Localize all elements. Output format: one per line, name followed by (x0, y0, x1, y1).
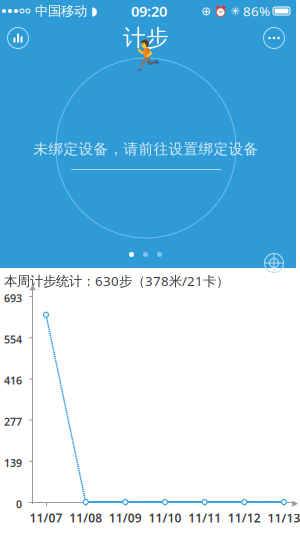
staticText: 11/07 (29, 510, 62, 526)
staticText: 277 (4, 415, 22, 429)
staticText: ◗ (91, 4, 97, 18)
staticText: 🏃 (127, 39, 164, 73)
staticText: 11/08 (69, 510, 102, 526)
staticText: 11/11 (188, 510, 221, 526)
staticText: 计步 (123, 24, 169, 52)
staticText: 11/13 (267, 510, 300, 526)
staticText: 11/09 (109, 510, 142, 526)
staticText: 86% (243, 2, 270, 20)
staticText: 11/12 (228, 510, 261, 526)
staticText: 中国移动 (35, 3, 87, 19)
staticText: ✳ (230, 4, 240, 18)
button[interactable]: Statistics (0, 20, 40, 56)
staticText: 554 (4, 332, 22, 346)
staticText: ▲ (29, 282, 35, 291)
staticText: 139 (4, 456, 22, 470)
staticText: 693 (4, 291, 22, 305)
staticText: ▶ (292, 498, 298, 508)
staticText: ⊕ (201, 4, 211, 18)
staticText: 11/10 (148, 510, 181, 526)
staticText: 416 (4, 373, 22, 388)
staticText: 本周计步统计：630步（378米/21卡） (4, 272, 229, 290)
staticText: 未绑定设备，请前往设置绑定设备 (33, 140, 258, 158)
button[interactable]: More options (252, 20, 296, 56)
staticText: 0 (16, 497, 22, 511)
staticText: ⏰ (214, 5, 227, 17)
button[interactable]: Location (259, 248, 289, 278)
staticText: 09:20 (131, 1, 167, 21)
